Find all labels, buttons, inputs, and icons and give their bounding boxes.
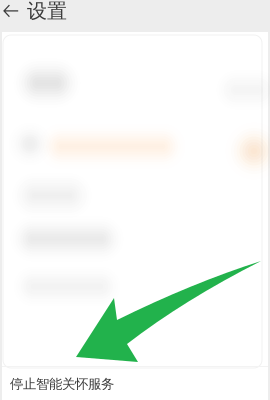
staticText: 设置 (27, 0, 67, 23)
staticText: 停止智能关怀服务 (10, 376, 114, 392)
button[interactable]: 停止智能关怀服务 (2, 368, 268, 400)
button[interactable]: 设置 (0, 0, 270, 22)
